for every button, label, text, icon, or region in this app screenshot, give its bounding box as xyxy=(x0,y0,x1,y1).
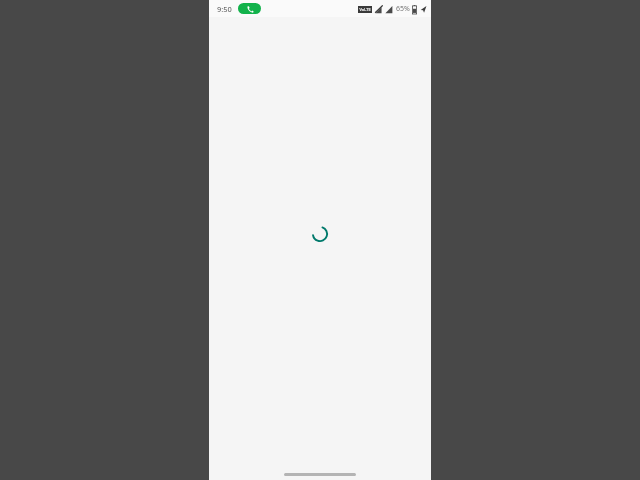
staticText: 65% xyxy=(396,4,410,14)
button[interactable]: Ongoing call xyxy=(238,3,261,14)
staticText: VoLTE xyxy=(359,7,371,12)
staticText: 9:50 xyxy=(217,4,232,14)
